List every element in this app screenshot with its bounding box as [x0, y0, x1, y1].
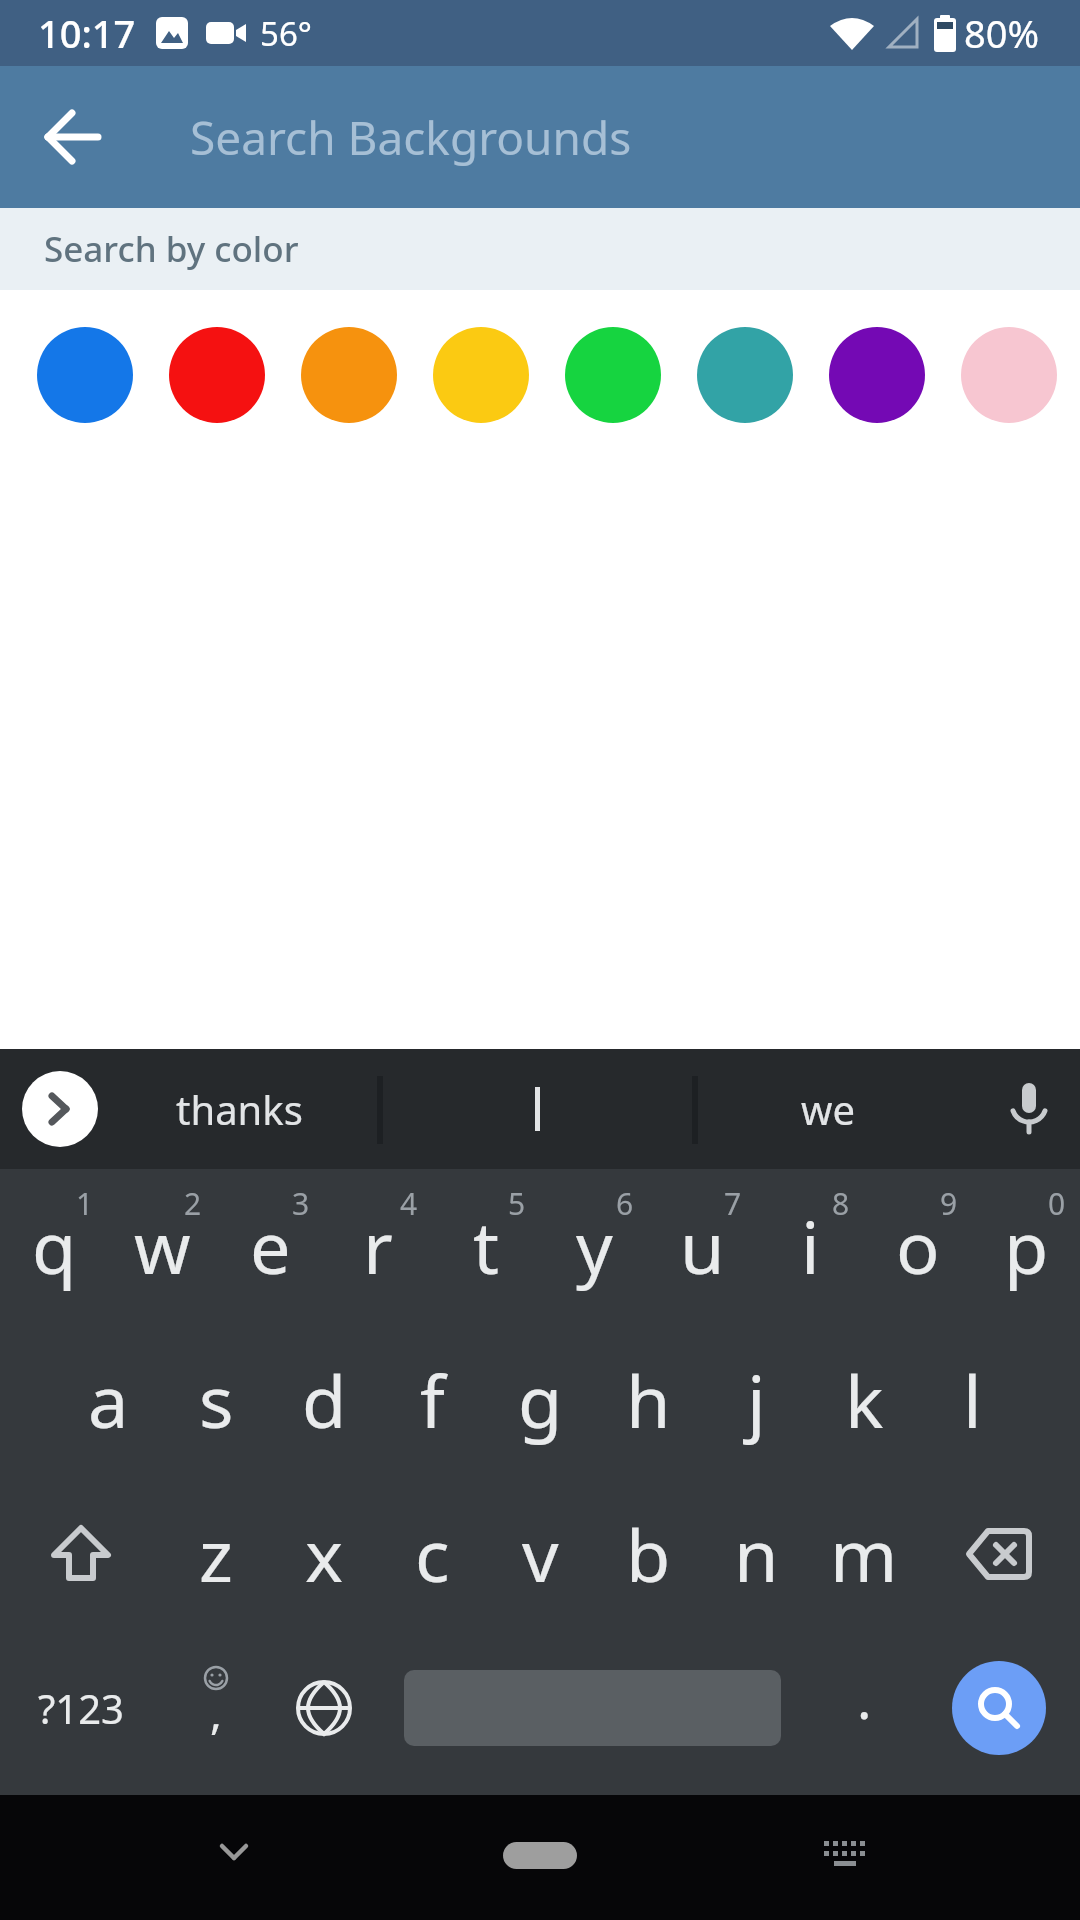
- button[interactable]: y: [540, 1169, 648, 1323]
- staticText: b: [626, 1505, 671, 1603]
- button[interactable]: e: [216, 1169, 324, 1323]
- staticText: n: [734, 1505, 779, 1603]
- staticText: 80%: [964, 7, 1040, 59]
- button[interactable]: g: [486, 1323, 594, 1477]
- staticText: k: [845, 1351, 884, 1449]
- button[interactable]: b: [594, 1477, 702, 1631]
- staticText: 56°: [260, 11, 312, 56]
- button[interactable]: [918, 1631, 1080, 1785]
- staticText: u: [680, 1197, 725, 1295]
- staticText: thanks: [176, 1082, 303, 1136]
- staticText: 0: [1048, 1183, 1066, 1224]
- button[interactable]: ,: [162, 1631, 270, 1785]
- staticText: .: [857, 1661, 872, 1735]
- button[interactable]: w: [108, 1169, 216, 1323]
- button[interactable]: r: [324, 1169, 432, 1323]
- button[interactable]: [301, 327, 397, 423]
- staticText: j: [747, 1351, 766, 1449]
- staticText: 6: [616, 1183, 634, 1224]
- staticText: x: [305, 1505, 344, 1603]
- button[interactable]: [270, 1631, 378, 1785]
- staticText: 3: [292, 1183, 310, 1224]
- staticText: ,: [210, 1682, 222, 1742]
- button[interactable]: thanks: [98, 1049, 380, 1169]
- button[interactable]: [37, 327, 133, 423]
- button[interactable]: v: [486, 1477, 594, 1631]
- staticText: c: [415, 1505, 450, 1603]
- button[interactable]: j: [702, 1323, 810, 1477]
- button[interactable]: x: [270, 1477, 378, 1631]
- button[interactable]: m: [810, 1477, 918, 1631]
- staticText: ?123: [38, 1681, 124, 1735]
- staticText: d: [302, 1351, 347, 1449]
- button[interactable]: f: [378, 1323, 486, 1477]
- button[interactable]: o: [864, 1169, 972, 1323]
- button[interactable]: ?123: [0, 1631, 162, 1785]
- staticText: e: [250, 1197, 291, 1295]
- staticText: t: [473, 1197, 499, 1295]
- button[interactable]: [961, 327, 1057, 423]
- staticText: Search Backgrounds: [190, 106, 632, 169]
- button[interactable]: [22, 1071, 98, 1147]
- button[interactable]: .: [810, 1631, 918, 1785]
- button[interactable]: [0, 1477, 162, 1631]
- button[interactable]: [378, 1631, 810, 1785]
- staticText: r: [363, 1197, 393, 1295]
- button[interactable]: c: [378, 1477, 486, 1631]
- button[interactable]: s: [162, 1323, 270, 1477]
- staticText: g: [518, 1351, 563, 1449]
- button[interactable]: [433, 327, 529, 423]
- staticText: l: [963, 1351, 982, 1449]
- button[interactable]: [169, 327, 265, 423]
- staticText: 5: [508, 1183, 526, 1224]
- staticText: 8: [832, 1183, 850, 1224]
- staticText: w: [134, 1197, 191, 1295]
- staticText: y: [576, 1197, 613, 1295]
- staticText: 9: [940, 1183, 958, 1224]
- staticText: 2: [184, 1183, 202, 1224]
- staticText: v: [522, 1505, 559, 1603]
- button[interactable]: t: [432, 1169, 540, 1323]
- button[interactable]: l: [918, 1323, 1026, 1477]
- button[interactable]: z: [162, 1477, 270, 1631]
- staticText: q: [32, 1197, 77, 1295]
- button[interactable]: h: [594, 1323, 702, 1477]
- button[interactable]: [918, 1477, 1080, 1631]
- button[interactable]: [829, 327, 925, 423]
- staticText: 4: [400, 1183, 418, 1224]
- button[interactable]: [565, 327, 661, 423]
- staticText: Search by color: [44, 225, 299, 273]
- staticText: h: [626, 1351, 671, 1449]
- staticText: o: [896, 1197, 940, 1295]
- button[interactable]: d: [270, 1323, 378, 1477]
- button[interactable]: Search Backgrounds: [190, 66, 1080, 208]
- button[interactable]: p: [972, 1169, 1080, 1323]
- button[interactable]: a: [54, 1323, 162, 1477]
- staticText: a: [88, 1351, 129, 1449]
- button[interactable]: q: [0, 1169, 108, 1323]
- button[interactable]: [984, 1049, 1074, 1169]
- staticText: m: [830, 1505, 898, 1603]
- button[interactable]: [503, 1842, 577, 1869]
- staticText: i: [801, 1197, 820, 1295]
- staticText: we: [801, 1082, 855, 1136]
- button[interactable]: [815, 1823, 875, 1883]
- staticText: 1: [76, 1183, 94, 1224]
- staticText: z: [199, 1505, 233, 1603]
- button[interactable]: [381, 1049, 694, 1169]
- staticText: 10:17: [38, 7, 136, 59]
- button[interactable]: we: [696, 1049, 960, 1169]
- button[interactable]: [697, 327, 793, 423]
- staticText: 7: [724, 1183, 742, 1224]
- button[interactable]: i: [756, 1169, 864, 1323]
- button[interactable]: u: [648, 1169, 756, 1323]
- button[interactable]: [23, 87, 123, 187]
- staticText: p: [1004, 1197, 1049, 1295]
- staticText: f: [420, 1351, 445, 1449]
- staticText: s: [199, 1351, 234, 1449]
- button[interactable]: k: [810, 1323, 918, 1477]
- button[interactable]: [204, 1822, 264, 1882]
- button[interactable]: n: [702, 1477, 810, 1631]
